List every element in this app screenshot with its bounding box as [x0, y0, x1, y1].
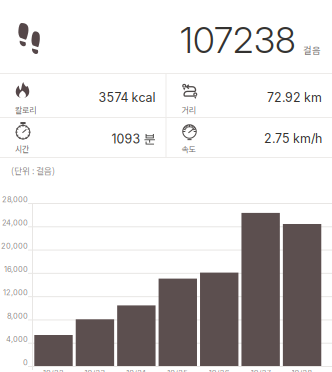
- staticText: 3574 kcal: [98, 90, 155, 105]
- button[interactable]: 칼로리: [0, 74, 165, 117]
- staticText: 20,000: [1, 242, 28, 251]
- staticText: 칼로리: [15, 104, 36, 116]
- staticText: 10/28: [292, 368, 313, 372]
- staticText: 28,000: [2, 195, 28, 204]
- staticText: (단위 : 걸음): [11, 164, 55, 177]
- staticText: 12,000: [3, 288, 28, 297]
- staticText: 16,000: [4, 265, 28, 274]
- button[interactable]: 거리: [166, 74, 332, 117]
- staticText: 10/27: [251, 368, 271, 372]
- staticText: 10/23: [84, 368, 105, 372]
- button[interactable]: 속도: [166, 118, 332, 157]
- staticText: 4,000: [6, 335, 28, 344]
- staticText: 10/26: [209, 368, 230, 372]
- staticText: 10/22: [43, 368, 64, 372]
- button[interactable]: 시간: [0, 118, 165, 157]
- staticText: 24,000: [2, 218, 28, 227]
- staticText: 거리: [181, 104, 195, 116]
- staticText: 8,000: [7, 311, 28, 320]
- staticText: 107238: [180, 18, 296, 62]
- staticText: 0: [23, 358, 28, 367]
- staticText: 1093 분: [111, 131, 155, 147]
- staticText: 10/25: [167, 368, 188, 372]
- staticText: 속도: [181, 143, 195, 155]
- staticText: 2.75 km/h: [264, 131, 322, 146]
- staticText: 72.92 km: [267, 90, 322, 105]
- staticText: 걸음: [303, 43, 321, 56]
- staticText: 10/24: [126, 368, 146, 372]
- staticText: 시간: [15, 143, 29, 155]
